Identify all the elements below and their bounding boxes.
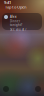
staticText: Tap to Open	[5, 4, 27, 10]
button[interactable]: Camera	[35, 86, 41, 92]
staticText: Alex	[10, 15, 16, 18]
button[interactable]: Flashlight	[3, 86, 9, 92]
staticText: 9:41	[4, 0, 11, 5]
staticText: Dinner tonight?	[10, 19, 22, 27]
staticText: See you at 7	[10, 28, 27, 31]
